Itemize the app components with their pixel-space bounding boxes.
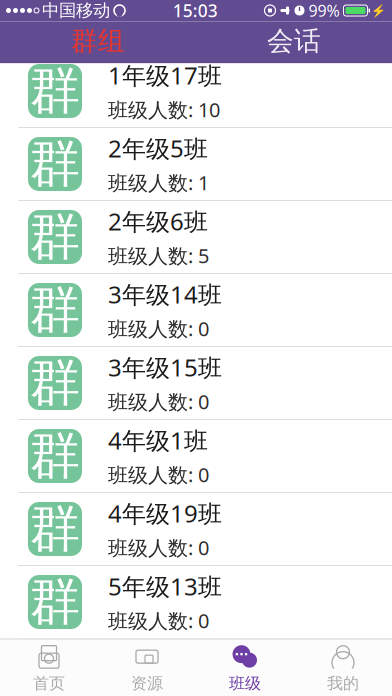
staticText: 班级人数: 0 (108, 607, 209, 634)
button[interactable]: 群 (0, 347, 392, 420)
button[interactable]: 会话 (196, 21, 392, 63)
staticText: 15:03 (173, 0, 218, 22)
staticText: 群 (29, 352, 80, 414)
staticText: 群 (29, 133, 80, 195)
button[interactable]: 班级 (196, 639, 294, 696)
staticText: 班级人数: 0 (108, 388, 209, 415)
staticText: 群 (29, 498, 80, 560)
staticText: 2年级6班 (108, 205, 208, 237)
staticText: 会话 (267, 25, 321, 57)
button[interactable]: 资源 (98, 639, 196, 696)
staticText: 班级人数: 10 (108, 96, 220, 123)
button[interactable]: 群 (0, 274, 392, 347)
staticText: 群 (29, 279, 80, 341)
staticText: 班级人数: 0 (108, 315, 209, 342)
button[interactable]: 群 (0, 566, 392, 639)
staticText: 班级人数: 0 (108, 534, 209, 561)
button[interactable]: 群 (0, 55, 392, 128)
button[interactable]: 首页 (0, 639, 98, 696)
staticText: 1年级17班 (108, 59, 222, 91)
button[interactable]: 群 (0, 420, 392, 493)
button[interactable]: 群 (0, 128, 392, 201)
staticText: 班级 (229, 674, 261, 693)
staticText: 群组 (71, 25, 125, 57)
staticText: 我的 (327, 674, 359, 693)
staticText: 班级人数: 1 (108, 169, 209, 196)
staticText: ⚡ (371, 4, 386, 17)
staticText: 4年级19班 (108, 497, 222, 529)
staticText: 班级人数: 0 (108, 461, 209, 488)
staticText: 99% (308, 0, 339, 21)
staticText: 群 (29, 425, 80, 487)
staticText: 群 (29, 571, 80, 633)
button[interactable]: 群 (0, 201, 392, 274)
button[interactable]: 群组 (0, 21, 196, 63)
staticText: 2年级5班 (108, 132, 208, 164)
staticText: 群 (29, 206, 80, 268)
staticText: 资源 (131, 674, 163, 693)
staticText: 群 (29, 60, 80, 122)
staticText: 中国移动 (42, 0, 110, 21)
staticText: 3年级15班 (108, 351, 222, 383)
staticText: 4年级1班 (108, 424, 208, 456)
button[interactable]: 群 (0, 493, 392, 566)
staticText: 班级人数: 5 (108, 242, 209, 269)
button[interactable]: 我的 (294, 639, 392, 696)
staticText: 3年级14班 (108, 278, 222, 310)
staticText: 5年级13班 (108, 570, 222, 602)
staticText: 首页 (33, 674, 65, 693)
